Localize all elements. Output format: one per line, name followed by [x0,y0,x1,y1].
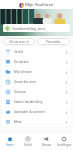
staticText: Profiel [24,143,32,147]
button[interactable]: Declaratie [2,57,71,67]
button[interactable]: Salaris handleiding [2,97,71,107]
button[interactable]: Personalia [37,38,70,45]
staticText: Verzuim [14,90,65,94]
button[interactable]: Meer [2,117,71,127]
staticText: Instellingen [57,143,72,147]
staticText: Declaratie [14,60,65,64]
button[interactable]: Uploaden & scannen [2,107,71,117]
button[interactable]: Profiel [19,133,37,150]
staticText: Mijn dossier [14,70,65,74]
staticText: Verlof [14,50,65,54]
staticText: Uploaden & scannen [14,110,65,114]
staticText: Meer [14,120,65,124]
staticText: Goedemiddag, Joris [12,26,46,31]
button[interactable]: Vul uw uren in [3,38,35,45]
button[interactable]: Goedemiddag, Joris [3,24,70,32]
button[interactable]: Mijn dossier [2,67,71,77]
staticText: Gewerkte uren [14,80,65,84]
button[interactable]: Home [0,133,19,150]
staticText: Vul uw uren in [9,40,29,44]
staticText: Home [6,143,14,147]
button[interactable]: Verzuim [2,87,71,97]
button[interactable]: Verlof [2,47,71,57]
staticText: Mijn YouForce [25,2,54,8]
button[interactable]: Instellingen [55,133,73,150]
staticText: Personalia [46,40,61,44]
staticText: Salaris handleiding [14,100,65,104]
button[interactable]: Nieuws [37,133,55,150]
staticText: Nieuws [42,143,51,147]
button[interactable]: Gewerkte uren [2,77,71,87]
